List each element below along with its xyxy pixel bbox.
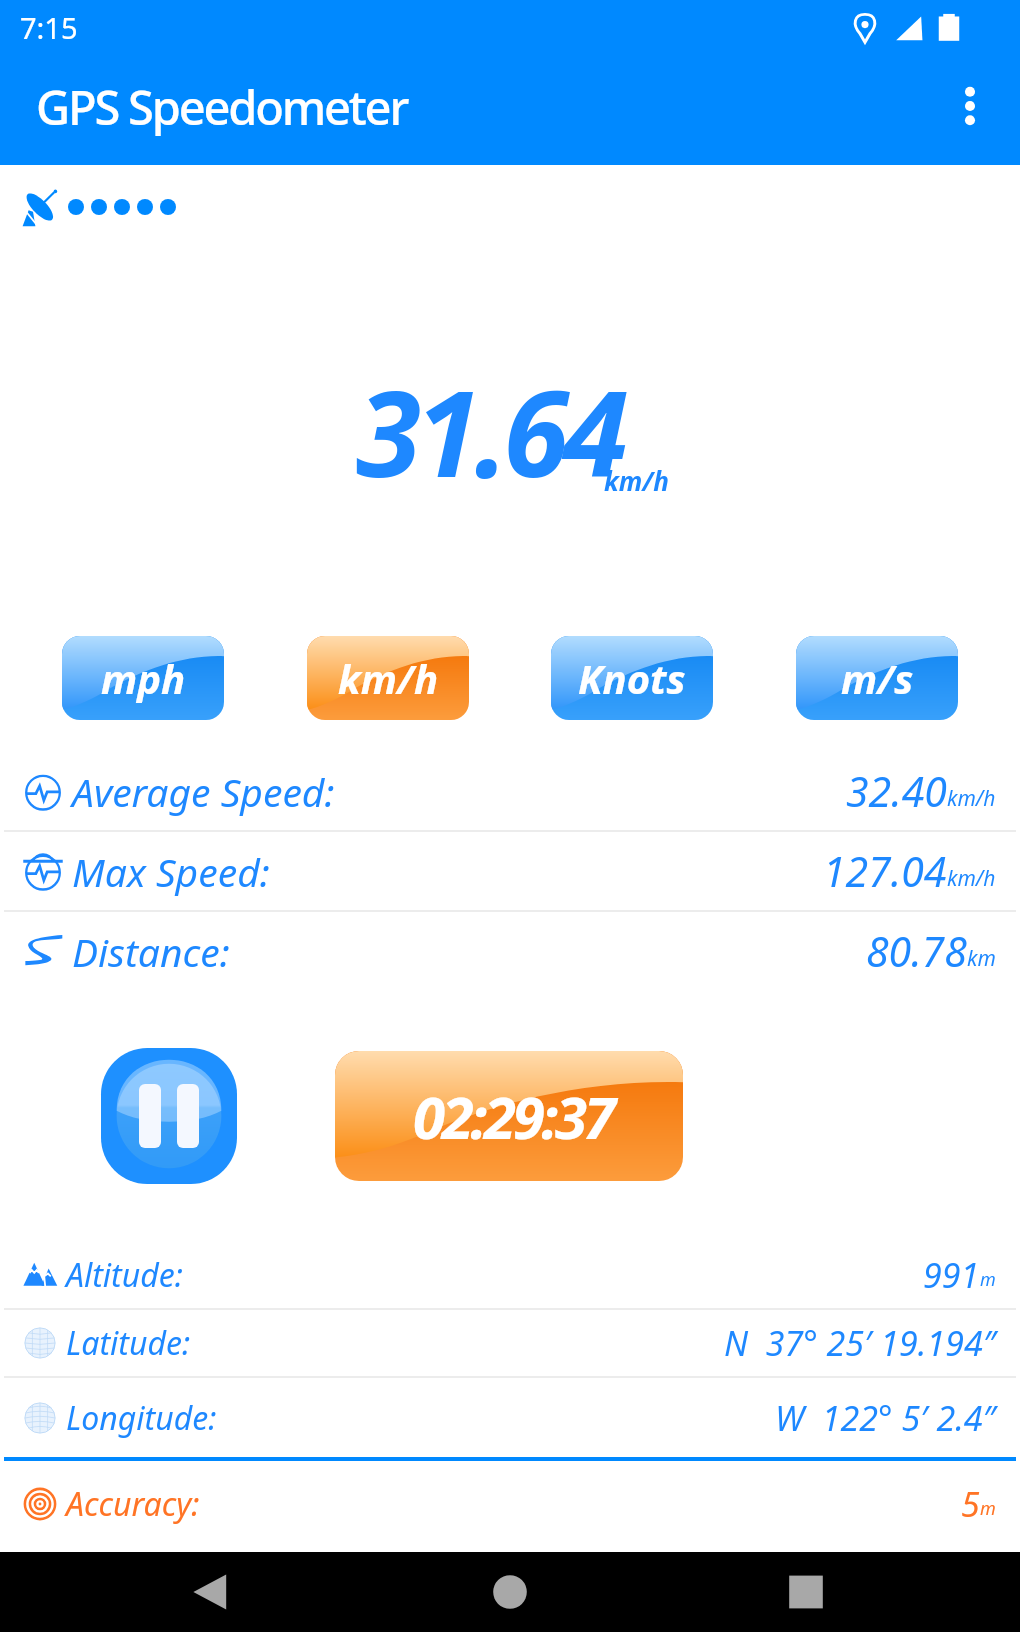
staticText: W 122° 5′ 2.4″ (775, 1395, 996, 1441)
button[interactable]: mph (62, 636, 224, 720)
staticText: m (980, 1267, 996, 1292)
button[interactable]: km/h (307, 636, 469, 720)
button[interactable]: Knots (551, 636, 713, 720)
staticText: N 37° 25′ 19.194″ (724, 1320, 996, 1366)
staticText: m/s (841, 651, 914, 705)
staticText: Max Speed: (72, 845, 270, 898)
button[interactable]: Pause (101, 1048, 237, 1184)
staticText: 5 (961, 1481, 980, 1527)
button[interactable]: More options (920, 55, 1020, 165)
staticText: 127.04 (823, 843, 947, 899)
staticText: km/h (947, 784, 996, 813)
staticText: Accuracy: (66, 1482, 200, 1526)
button[interactable]: Max Speed: (0, 832, 1020, 910)
button[interactable]: Recents (766, 1552, 846, 1632)
staticText: 7:15 (20, 8, 78, 47)
staticText: Knots (578, 651, 686, 705)
staticText: 02:29:37 (413, 1077, 613, 1156)
button[interactable]: Longitude: (0, 1378, 1020, 1457)
button[interactable]: Accuracy: (0, 1471, 1020, 1537)
button[interactable]: Altitude: (0, 1242, 1020, 1308)
staticText: mph (101, 651, 186, 705)
staticText: km/h (604, 463, 670, 498)
staticText: km/h (338, 651, 439, 705)
button[interactable]: Average Speed: (0, 752, 1020, 830)
button[interactable]: Back (171, 1552, 251, 1632)
staticText: Latitude: (66, 1321, 191, 1365)
staticText: km (967, 944, 996, 973)
staticText: 991 (923, 1252, 980, 1298)
staticText: Altitude: (66, 1253, 183, 1297)
staticText: Distance: (72, 925, 230, 978)
staticText: m (980, 1496, 996, 1521)
staticText: Average Speed: (72, 765, 335, 818)
button[interactable]: m/s (796, 636, 958, 720)
staticText: 31.64 (356, 351, 623, 512)
staticText: 32.40 (846, 763, 947, 819)
staticText: GPS Speedometer (36, 75, 408, 139)
button[interactable]: Distance: (0, 912, 1020, 990)
button[interactable]: Home (470, 1552, 550, 1632)
button[interactable]: 02:29:37 (335, 1051, 683, 1181)
staticText: km/h (947, 864, 996, 893)
staticText: 80.78 (866, 923, 967, 979)
staticText: Longitude: (66, 1396, 217, 1440)
button[interactable]: Latitude: (0, 1310, 1020, 1376)
